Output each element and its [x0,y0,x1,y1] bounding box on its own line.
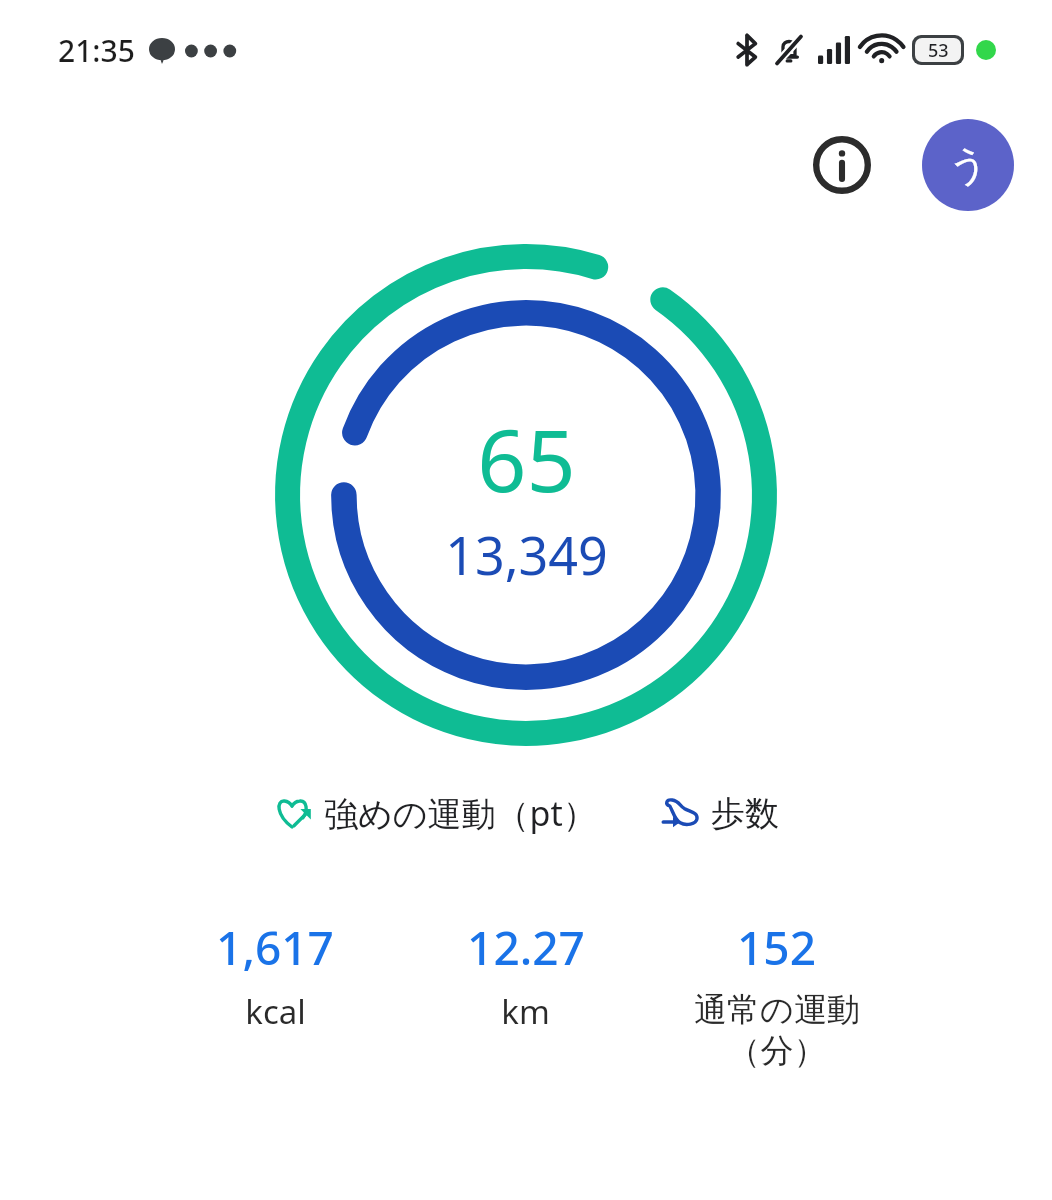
button[interactable]: Info [800,123,884,207]
staticText: 13,349 [445,519,608,590]
staticText: 65 [477,400,576,517]
staticText: 152 [737,916,816,979]
staticText: 歩数 [711,792,779,835]
button[interactable]: 12.27 [400,914,651,1036]
button[interactable]: 強めの運動（pt） [270,786,601,840]
staticText: 1,617 [216,916,334,979]
button[interactable]: 1,617 [150,914,400,1036]
button[interactable]: 152 [651,914,902,1074]
staticText: 12.27 [467,916,585,979]
button[interactable]: Daily activity rings [271,240,781,750]
staticText: 53 [928,38,949,62]
button[interactable]: Account [922,119,1014,211]
button[interactable]: 歩数 [657,788,783,839]
staticText: う [948,140,989,190]
staticText: 強めの運動（pt） [324,790,597,836]
staticText: 通常の運動 （分） [694,989,860,1072]
staticText: kcal [245,989,306,1034]
staticText: km [501,989,550,1034]
staticText: 21:35 [58,30,135,71]
